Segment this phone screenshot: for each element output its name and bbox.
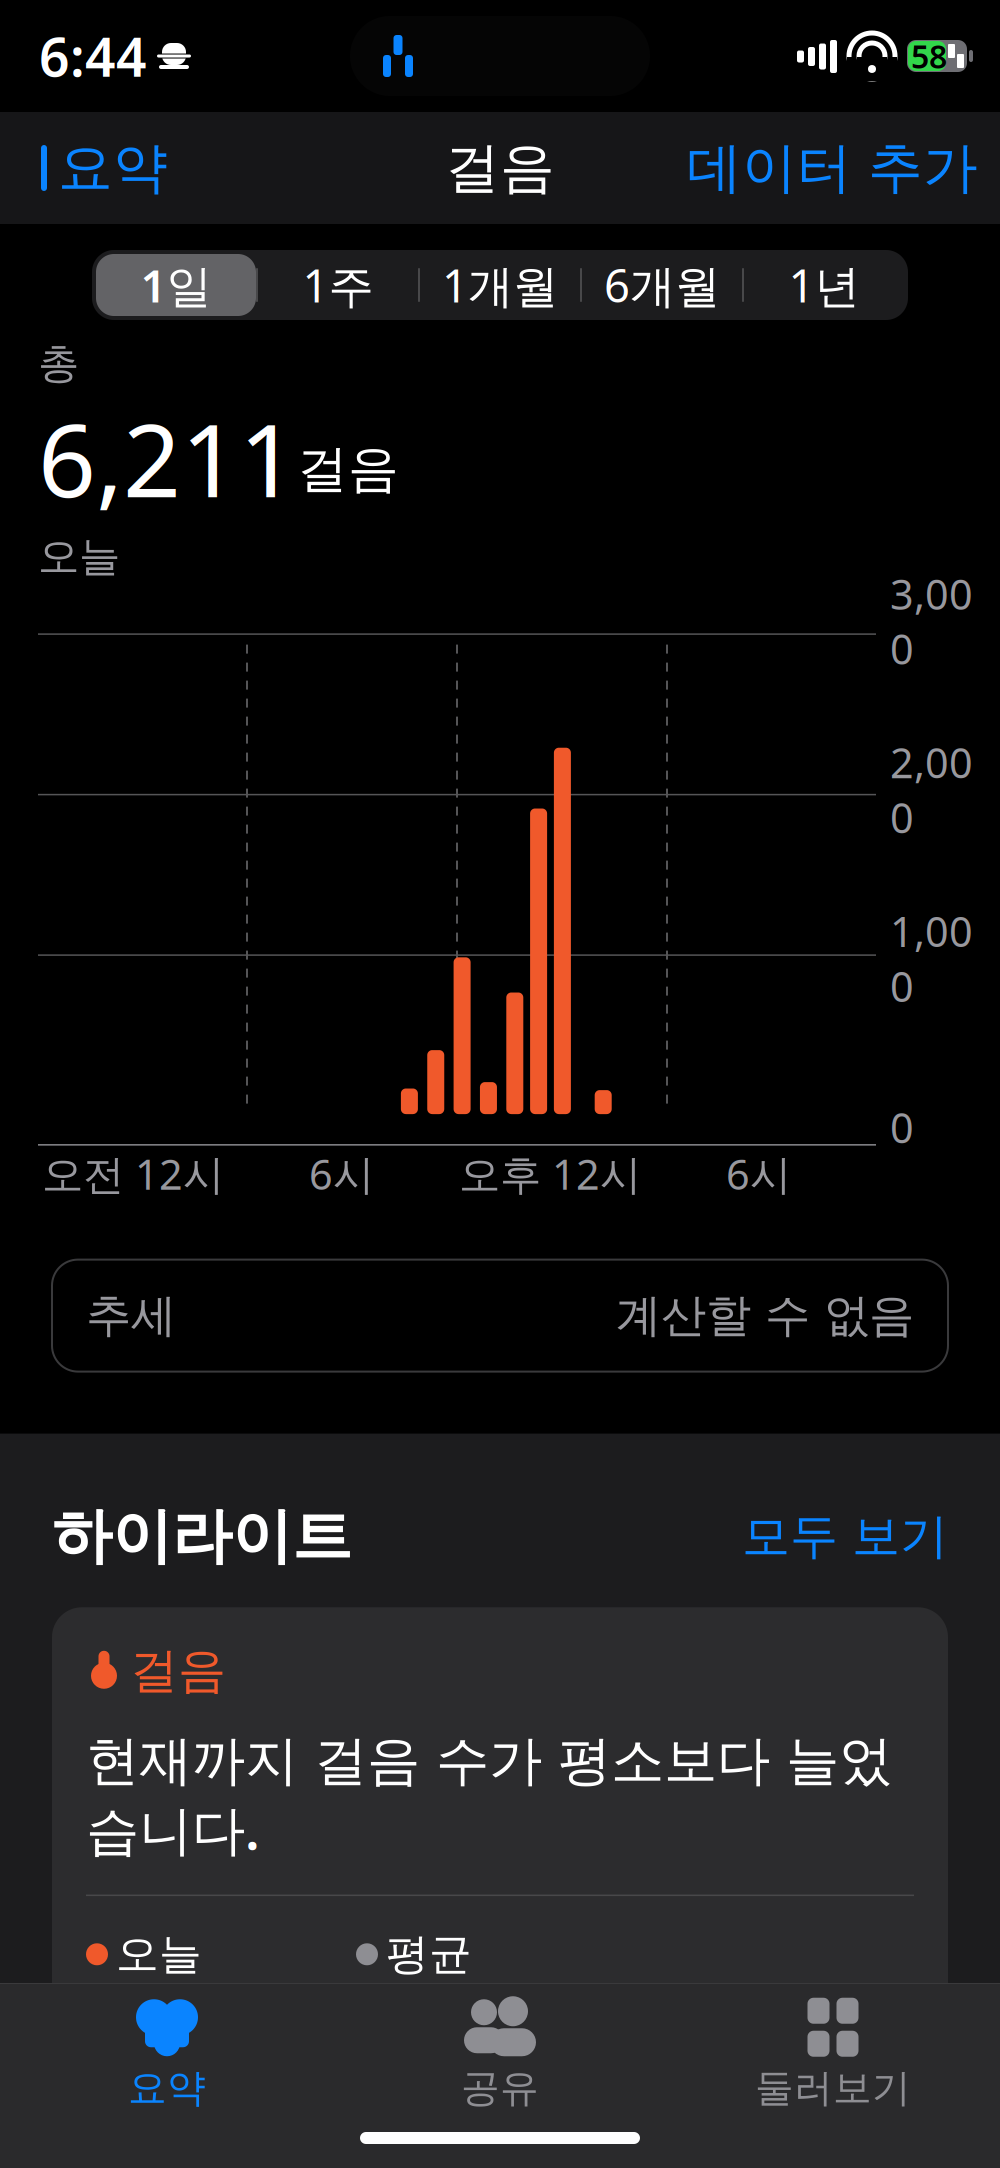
staticText: 현재까지 걸음 수가 평소보다 늘었습니다. bbox=[86, 1728, 892, 1865]
staticText: 모두 보기 bbox=[742, 1507, 948, 1566]
staticText: 오후 12시 bbox=[459, 1146, 641, 1201]
staticText: 총 bbox=[38, 338, 79, 389]
button[interactable]: 걸음 bbox=[52, 1607, 948, 2020]
button[interactable]: 공유 bbox=[333, 1996, 666, 2114]
staticText: 공유 bbox=[461, 2064, 539, 2112]
staticText: 58 bbox=[911, 35, 947, 77]
staticText: 1일 bbox=[140, 255, 211, 315]
staticText: 1개월 bbox=[442, 255, 558, 315]
staticText: 6개월 bbox=[604, 255, 720, 315]
staticText: 1년 bbox=[788, 255, 859, 315]
staticText: 둘러보기 bbox=[755, 2064, 911, 2112]
staticText: 1주 bbox=[302, 255, 373, 315]
staticText: 6시 bbox=[309, 1146, 374, 1201]
staticText: 6,211 bbox=[38, 391, 297, 525]
button[interactable]: 요약 bbox=[0, 120, 190, 215]
staticText: 하이라이트 bbox=[52, 1500, 352, 1573]
button[interactable]: 데이터 추가 bbox=[665, 120, 1000, 215]
staticText: 요약 bbox=[128, 2064, 206, 2112]
staticText: 오늘 bbox=[38, 531, 120, 582]
button[interactable]: 1년 bbox=[744, 254, 904, 316]
staticText: 요약 bbox=[58, 134, 168, 201]
staticText: 걸음 bbox=[297, 438, 399, 500]
button[interactable]: 1개월 bbox=[420, 254, 580, 316]
button[interactable]: 1주 bbox=[258, 254, 418, 316]
staticText: 데이터 추가 bbox=[687, 134, 978, 201]
staticText: 1,000 bbox=[890, 903, 973, 1013]
staticText: 2,000 bbox=[890, 735, 973, 845]
staticText: 추세 bbox=[86, 1288, 176, 1343]
button[interactable]: 둘러보기 bbox=[666, 1996, 999, 2114]
staticText: 오전 12시 bbox=[42, 1146, 224, 1201]
staticText: 0 bbox=[890, 1100, 914, 1155]
button[interactable]: 추세 bbox=[52, 1260, 948, 1372]
staticText: 오늘 bbox=[116, 1928, 202, 1980]
staticText: 6시 bbox=[726, 1146, 791, 1201]
button[interactable]: 1일 bbox=[96, 254, 256, 316]
button[interactable]: 6개월 bbox=[582, 254, 742, 316]
staticText: 걸음 bbox=[130, 1641, 226, 1700]
staticText: 3,000 bbox=[890, 566, 973, 676]
button[interactable]: 모두 보기 bbox=[742, 1507, 948, 1566]
staticText: 계산할 수 없음 bbox=[616, 1288, 914, 1343]
staticText: 6:44 bbox=[39, 21, 147, 91]
staticText: 걸음 bbox=[445, 134, 555, 201]
button[interactable]: 요약 bbox=[0, 1996, 333, 2114]
staticText: 평균 bbox=[386, 1928, 472, 1980]
